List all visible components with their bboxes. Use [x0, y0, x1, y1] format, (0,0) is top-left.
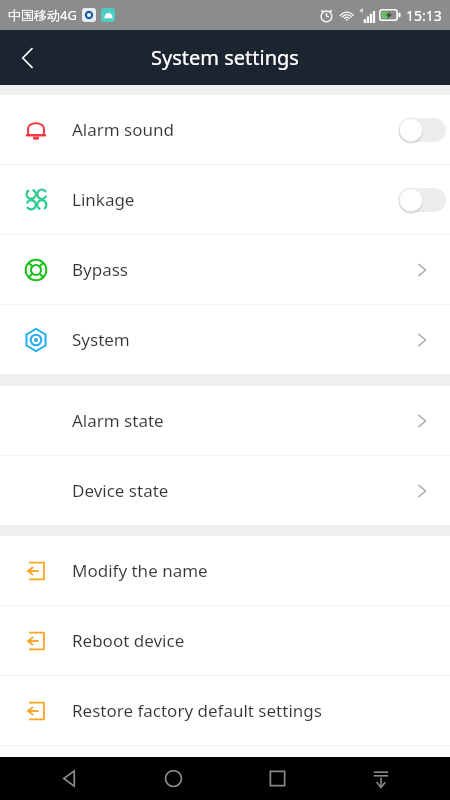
button[interactable]: Back: [34, 757, 104, 800]
button[interactable]: Bypass: [0, 235, 450, 304]
button[interactable]: Home: [138, 757, 208, 800]
button[interactable]: Alarm state: [0, 386, 450, 455]
button[interactable]: Linkage: [0, 165, 450, 234]
button[interactable]: Recents: [242, 757, 312, 800]
staticText: Linkage: [72, 188, 394, 211]
button[interactable]: Modify the name: [0, 536, 450, 605]
button[interactable]: Toggle: [398, 117, 446, 143]
staticText: Alarm state: [72, 409, 394, 432]
button[interactable]: Device state: [0, 456, 450, 525]
button[interactable]: Back: [0, 30, 56, 85]
staticText: Reboot device: [72, 629, 394, 652]
staticText: Bypass: [72, 258, 394, 281]
button[interactable]: Restore factory default settings: [0, 676, 450, 745]
button[interactable]: Hide navigation bar: [346, 757, 416, 800]
button[interactable]: Alarm sound: [0, 95, 450, 164]
staticText: Alarm sound: [72, 118, 394, 141]
staticText: 15:13: [406, 6, 442, 25]
staticText: System: [72, 328, 394, 351]
staticText: System settings: [151, 44, 299, 71]
staticText: Device state: [72, 479, 394, 502]
button[interactable]: Reboot device: [0, 606, 450, 675]
staticText: Restore factory default settings: [72, 699, 394, 722]
staticText: Modify the name: [72, 559, 394, 582]
button[interactable]: System: [0, 305, 450, 374]
staticText: 中国移动4G: [8, 6, 77, 24]
button[interactable]: Toggle: [398, 187, 446, 213]
